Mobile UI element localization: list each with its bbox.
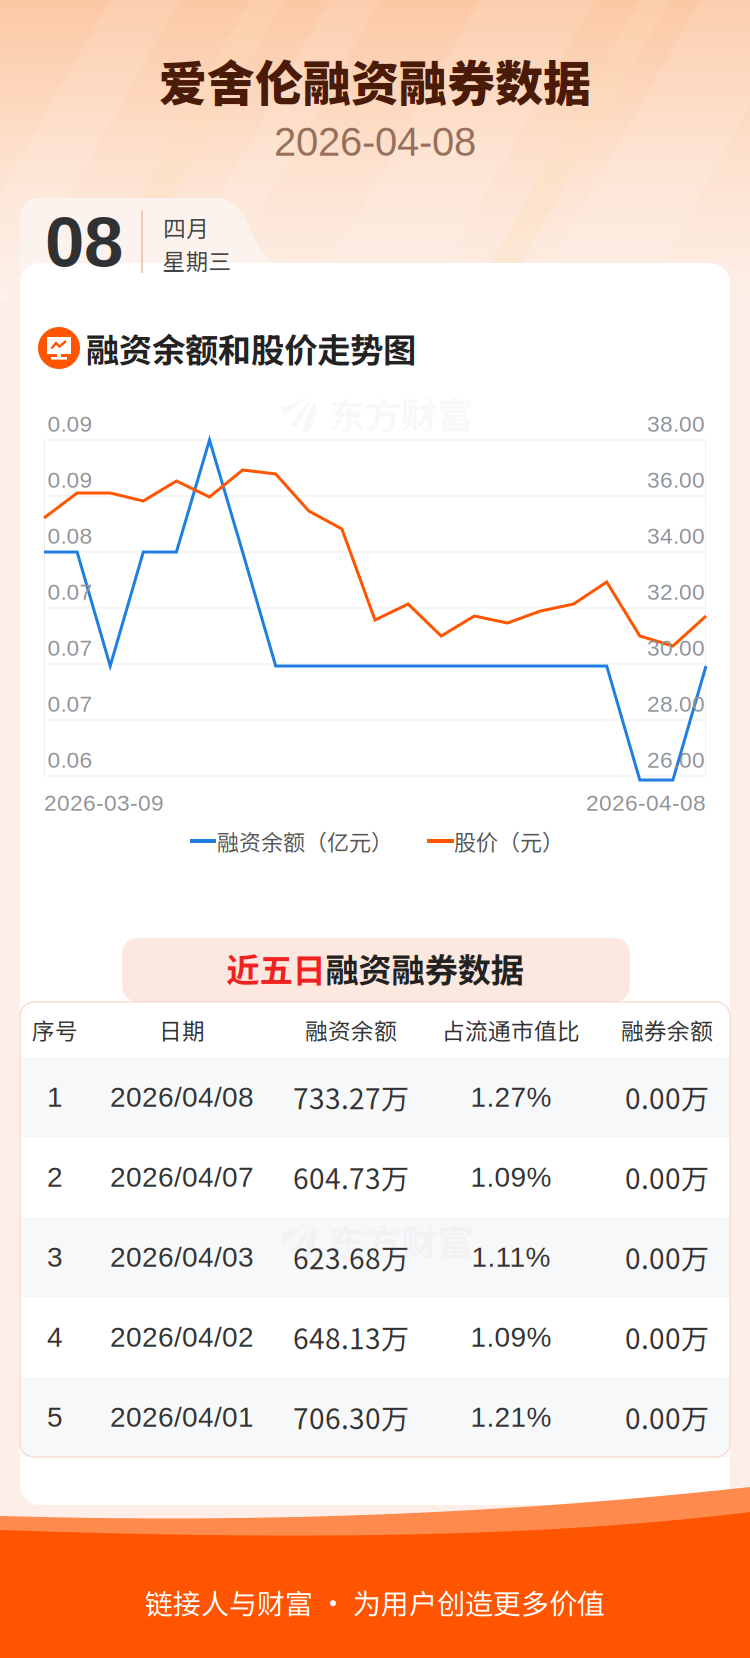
staticText: 648.13万 — [293, 1317, 409, 1357]
staticText: 2026-03-09 — [44, 790, 164, 816]
staticText: 28.00 — [647, 691, 705, 717]
staticText: 706.30万 — [293, 1397, 409, 1437]
staticText: 1.09% — [470, 1161, 551, 1193]
staticText: 1 — [47, 1081, 63, 1113]
staticText: 2026-04-08 — [274, 120, 476, 164]
staticText: 2026/04/02 — [110, 1321, 254, 1353]
staticText: 1.09% — [470, 1321, 551, 1353]
staticText: 1.11% — [471, 1241, 550, 1273]
staticText: 星期三 — [162, 244, 231, 276]
staticText: 0.00万 — [625, 1237, 709, 1277]
staticText: 604.73万 — [293, 1157, 409, 1197]
staticText: 0.07 — [47, 691, 92, 717]
staticText: 08 — [45, 202, 123, 281]
staticText: 近五日 — [226, 944, 325, 992]
staticText: 2026-04-08 — [586, 790, 706, 816]
staticText: 5 — [47, 1401, 63, 1433]
staticText: 1.21% — [470, 1401, 551, 1433]
staticText: 融资余额（亿元） — [217, 825, 393, 857]
staticText: 0.09 — [47, 411, 92, 437]
staticText: 0.07 — [47, 635, 92, 661]
staticText: 东方财富 — [329, 1214, 473, 1266]
staticText: 30.00 — [647, 635, 705, 661]
staticText: 623.68万 — [293, 1237, 409, 1277]
staticText: 融资余额 — [305, 1013, 397, 1046]
staticText: 2026/04/01 — [110, 1401, 254, 1433]
staticText: 3 — [47, 1241, 63, 1273]
staticText: 733.27万 — [293, 1077, 409, 1117]
staticText: 融券余额 — [621, 1013, 713, 1046]
staticText: 26.00 — [647, 747, 705, 773]
staticText: 0.00万 — [625, 1157, 709, 1197]
staticText: 四月 — [163, 211, 209, 243]
staticText: 0.07 — [47, 579, 92, 605]
staticText: 0.00万 — [625, 1317, 709, 1357]
staticText: 日期 — [159, 1013, 205, 1046]
staticText: 股价（元） — [454, 825, 564, 857]
staticText: 序号 — [32, 1013, 78, 1046]
staticText: 38.00 — [647, 411, 705, 437]
staticText: 4 — [47, 1321, 63, 1353]
staticText: 融资融券数据 — [325, 944, 523, 992]
staticText: 融资余额和股价走势图 — [86, 324, 416, 372]
staticText: 0.00万 — [625, 1397, 709, 1437]
staticText: 链接人与财富 · 为用户创造更多价值 — [145, 1582, 605, 1622]
staticText: 爱舍伦融资融券数据 — [159, 45, 591, 115]
staticText: 0.09 — [47, 467, 92, 493]
staticText: 0.08 — [47, 523, 92, 549]
staticText: 1.27% — [470, 1081, 551, 1113]
staticText: 占流通市值比 — [442, 1013, 580, 1046]
staticText: 2026/04/03 — [110, 1241, 254, 1273]
staticText: 2 — [47, 1161, 63, 1193]
staticText: 0.00万 — [625, 1077, 709, 1117]
staticText: 0.06 — [47, 747, 92, 773]
staticText: 36.00 — [647, 467, 705, 493]
staticText: 2026/04/08 — [110, 1081, 254, 1113]
staticText: 2026/04/07 — [110, 1161, 254, 1193]
staticText: 32.00 — [647, 579, 705, 605]
staticText: 34.00 — [647, 523, 705, 549]
